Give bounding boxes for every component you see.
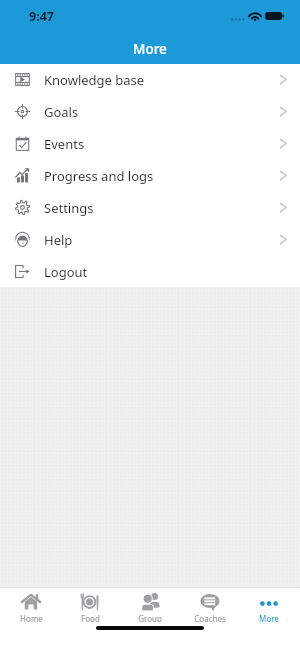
staticText: Progress and logs: [44, 167, 154, 185]
button[interactable]: Events: [0, 128, 300, 159]
button[interactable]: Goals: [0, 96, 300, 127]
staticText: Help: [44, 231, 73, 249]
staticText: Goals: [44, 103, 79, 121]
button[interactable]: Coaches: [181, 588, 239, 622]
staticText: Settings: [44, 199, 94, 217]
staticText: 9:47: [29, 8, 54, 25]
button[interactable]: Home: [2, 588, 60, 622]
button[interactable]: Progress and logs: [0, 160, 300, 191]
staticText: Home: [20, 613, 43, 622]
staticText: More: [259, 613, 279, 622]
button[interactable]: Knowledge base: [0, 64, 300, 95]
staticText: More: [133, 40, 167, 58]
staticText: Logout: [44, 263, 88, 281]
button[interactable]: Help: [0, 224, 300, 255]
button[interactable]: Food: [61, 588, 119, 622]
staticText: Coaches: [194, 613, 226, 622]
staticText: Group: [138, 613, 162, 622]
button[interactable]: Logout: [0, 256, 300, 287]
staticText: Knowledge base: [44, 71, 145, 89]
button[interactable]: Group: [121, 588, 179, 622]
staticText: Food: [81, 613, 100, 622]
staticText: Events: [44, 135, 85, 153]
button[interactable]: More: [240, 588, 298, 622]
button[interactable]: Settings: [0, 192, 300, 223]
